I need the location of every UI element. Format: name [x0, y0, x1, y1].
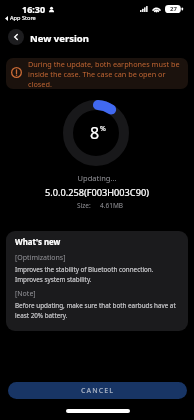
staticText: Improves the stability of Bluetooth conn… — [15, 265, 180, 284]
staticText: % — [100, 124, 106, 134]
staticText: 4.61MB — [100, 201, 124, 210]
staticText: 27 — [170, 5, 177, 13]
staticText: App Store — [10, 14, 36, 22]
staticText: CANCEL — [81, 386, 115, 396]
staticText: 8 — [90, 122, 100, 144]
staticText: [Optimizations] — [15, 253, 66, 263]
staticText: What's new — [15, 237, 61, 248]
staticText: During the update, both earphones must b… — [28, 59, 184, 89]
staticText: New version — [30, 32, 89, 45]
staticText: Updating... — [0, 173, 194, 183]
staticText: Before updating, make sure that both ear… — [15, 301, 180, 320]
staticText: Size: — [77, 201, 91, 210]
staticText: 5.0.0.258(F003H003C90) — [0, 186, 194, 199]
staticText: 16:30 — [22, 3, 46, 15]
button[interactable]: Back — [8, 29, 24, 45]
button[interactable]: CANCEL — [8, 382, 187, 399]
staticText: [Note] — [15, 289, 36, 299]
